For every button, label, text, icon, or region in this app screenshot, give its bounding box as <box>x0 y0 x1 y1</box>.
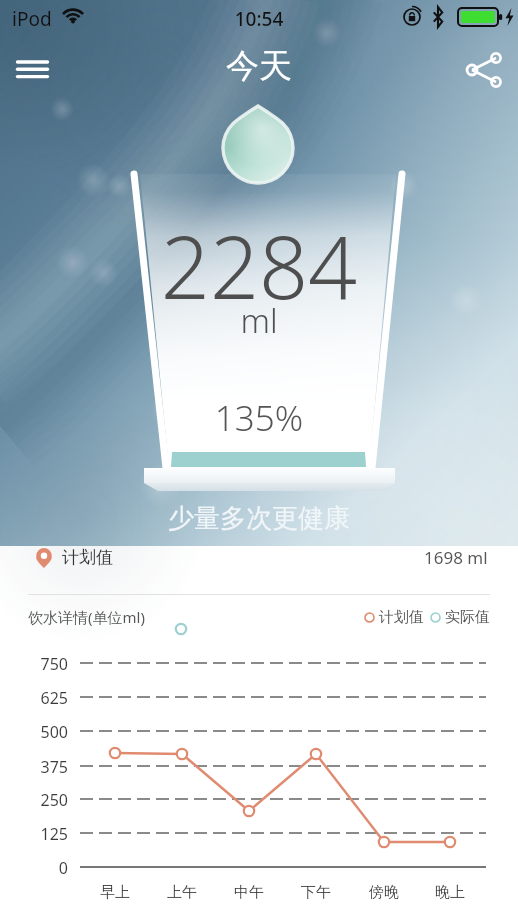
staticText: 750 <box>0 653 68 675</box>
staticText: 少量多次更健康 <box>0 502 518 535</box>
button[interactable]: Share <box>460 42 516 98</box>
staticText: ml <box>0 298 518 343</box>
staticText: 下午 <box>286 883 346 902</box>
staticText: iPod <box>12 6 52 32</box>
button[interactable]: Menu <box>8 46 56 94</box>
staticText: 135% <box>0 394 518 442</box>
staticText: 1698 ml <box>424 546 488 569</box>
staticText: 10:54 <box>0 6 518 32</box>
staticText: 375 <box>0 756 68 778</box>
staticText: 饮水详情(单位ml) <box>28 607 145 627</box>
staticText: 中午 <box>219 883 279 902</box>
staticText: 250 <box>0 789 68 811</box>
staticText: 计划值 <box>379 608 424 627</box>
staticText: 500 <box>0 721 68 743</box>
staticText: 上午 <box>152 883 212 902</box>
staticText: 实际值 <box>445 608 490 627</box>
staticText: 今天 <box>226 45 292 87</box>
staticText: 125 <box>0 823 68 845</box>
staticText: 晚上 <box>420 883 480 902</box>
staticText: 傍晚 <box>354 883 414 902</box>
staticText: 计划值 <box>62 547 113 568</box>
button[interactable]: 计划值 <box>0 546 518 594</box>
staticText: 早上 <box>85 883 145 902</box>
staticText: 625 <box>0 687 68 709</box>
staticText: 2284 <box>0 207 518 324</box>
staticText: 0 <box>0 857 68 879</box>
